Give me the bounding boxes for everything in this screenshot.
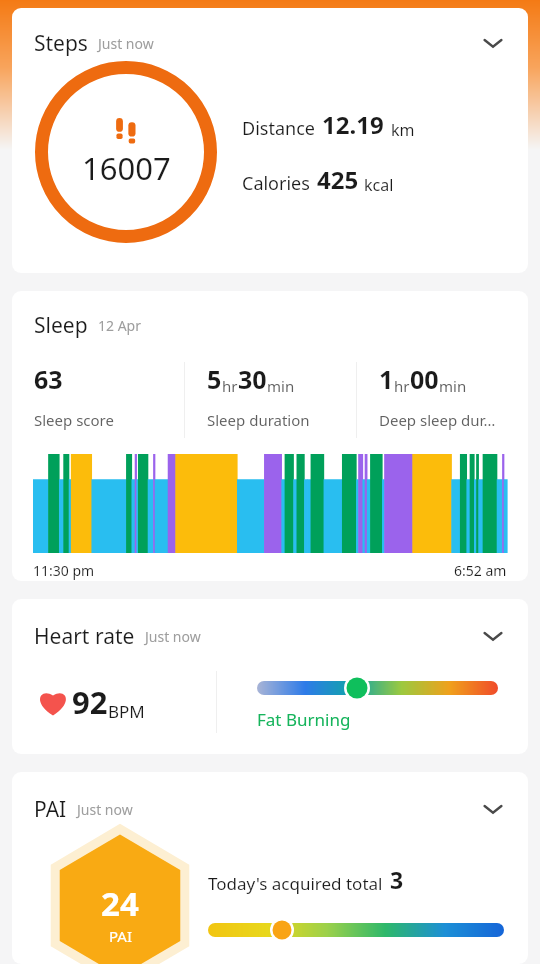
button[interactable]: Expand Steps bbox=[476, 26, 510, 60]
staticText: Sleep bbox=[34, 311, 88, 340]
staticText: Fat Burning bbox=[257, 708, 351, 731]
staticText: 00 bbox=[410, 362, 439, 396]
staticText: kcal bbox=[364, 174, 394, 196]
staticText: 63 bbox=[34, 362, 63, 396]
button[interactable]: Heart rate bbox=[12, 599, 528, 754]
staticText: 1 bbox=[379, 362, 394, 396]
staticText: 12.19 bbox=[322, 108, 384, 141]
staticText: PAI bbox=[109, 926, 132, 946]
staticText: hr bbox=[222, 376, 238, 396]
staticText: Steps bbox=[34, 29, 88, 58]
staticText: 30 bbox=[238, 362, 267, 396]
staticText: Heart rate bbox=[34, 622, 135, 651]
staticText: 92 bbox=[72, 681, 108, 723]
staticText: Just now bbox=[145, 627, 201, 646]
staticText: Sleep duration bbox=[207, 410, 310, 430]
staticText: BPM bbox=[108, 700, 145, 723]
staticText: PAI bbox=[34, 795, 67, 824]
staticText: 12 Apr bbox=[98, 316, 141, 335]
staticText: 24 bbox=[101, 881, 139, 926]
staticText: 16007 bbox=[82, 147, 171, 189]
staticText: min bbox=[439, 376, 467, 396]
button[interactable]: Sleep bbox=[12, 291, 528, 581]
staticText: km bbox=[391, 119, 415, 141]
staticText: Just now bbox=[77, 800, 133, 819]
staticText: hr bbox=[394, 376, 410, 396]
button[interactable]: Expand PAI bbox=[476, 792, 510, 826]
staticText: 11:30 pm bbox=[33, 561, 95, 580]
staticText: 6:52 am bbox=[454, 561, 507, 580]
button[interactable]: PAI bbox=[12, 772, 528, 964]
staticText: Today's acquired total bbox=[208, 872, 383, 895]
button[interactable]: Steps bbox=[12, 8, 528, 273]
staticText: 3 bbox=[390, 864, 404, 895]
staticText: Distance bbox=[242, 116, 315, 141]
staticText: Deep sleep dur… bbox=[379, 410, 496, 430]
staticText: Calories bbox=[242, 171, 310, 196]
staticText: Just now bbox=[98, 34, 154, 53]
staticText: Sleep score bbox=[34, 410, 114, 430]
button[interactable]: Expand Heart rate bbox=[476, 619, 510, 653]
staticText: 5 bbox=[207, 362, 222, 396]
staticText: 425 bbox=[317, 163, 359, 196]
staticText: min bbox=[267, 376, 295, 396]
